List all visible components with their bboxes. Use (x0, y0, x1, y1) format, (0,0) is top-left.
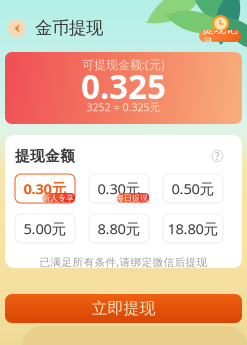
staticText: 0.30元 (23, 179, 66, 198)
button[interactable]: 8.80元 (89, 214, 149, 243)
button[interactable]: 0.50元 (163, 174, 223, 203)
staticText: 提现记录 (202, 21, 238, 51)
staticText: 立即提现 (91, 299, 155, 318)
staticText: 可提现金额:(元) (82, 56, 165, 72)
staticText: 3252 = 0.325元 (86, 100, 160, 114)
button[interactable]: 0.30元 (89, 174, 149, 203)
staticText: 金币提现 (35, 17, 103, 39)
staticText: 新人专享 (42, 193, 74, 203)
button[interactable]: 立即提现 (5, 294, 242, 323)
staticText: 18.80元 (167, 219, 218, 238)
button[interactable]: 18.80元 (163, 214, 223, 243)
button[interactable]: Help (212, 150, 223, 161)
staticText: 提现金额 (15, 147, 75, 165)
button[interactable]: 0.30元 (15, 174, 75, 203)
button[interactable]: Back (7, 18, 27, 38)
staticText: 0.30元 (97, 179, 140, 198)
staticText: 5.00元 (23, 219, 66, 238)
staticText: 每日提现 (116, 193, 148, 203)
staticText: ? (215, 149, 220, 163)
button[interactable]: 5.00元 (15, 214, 75, 243)
button[interactable]: 提现记录 (199, 15, 242, 43)
staticText: 0.325 (81, 64, 166, 108)
staticText: 8.80元 (97, 219, 140, 238)
staticText: 已满足所有条件,请绑定微信后提现 (39, 255, 207, 269)
staticText: 0.50元 (171, 179, 214, 198)
